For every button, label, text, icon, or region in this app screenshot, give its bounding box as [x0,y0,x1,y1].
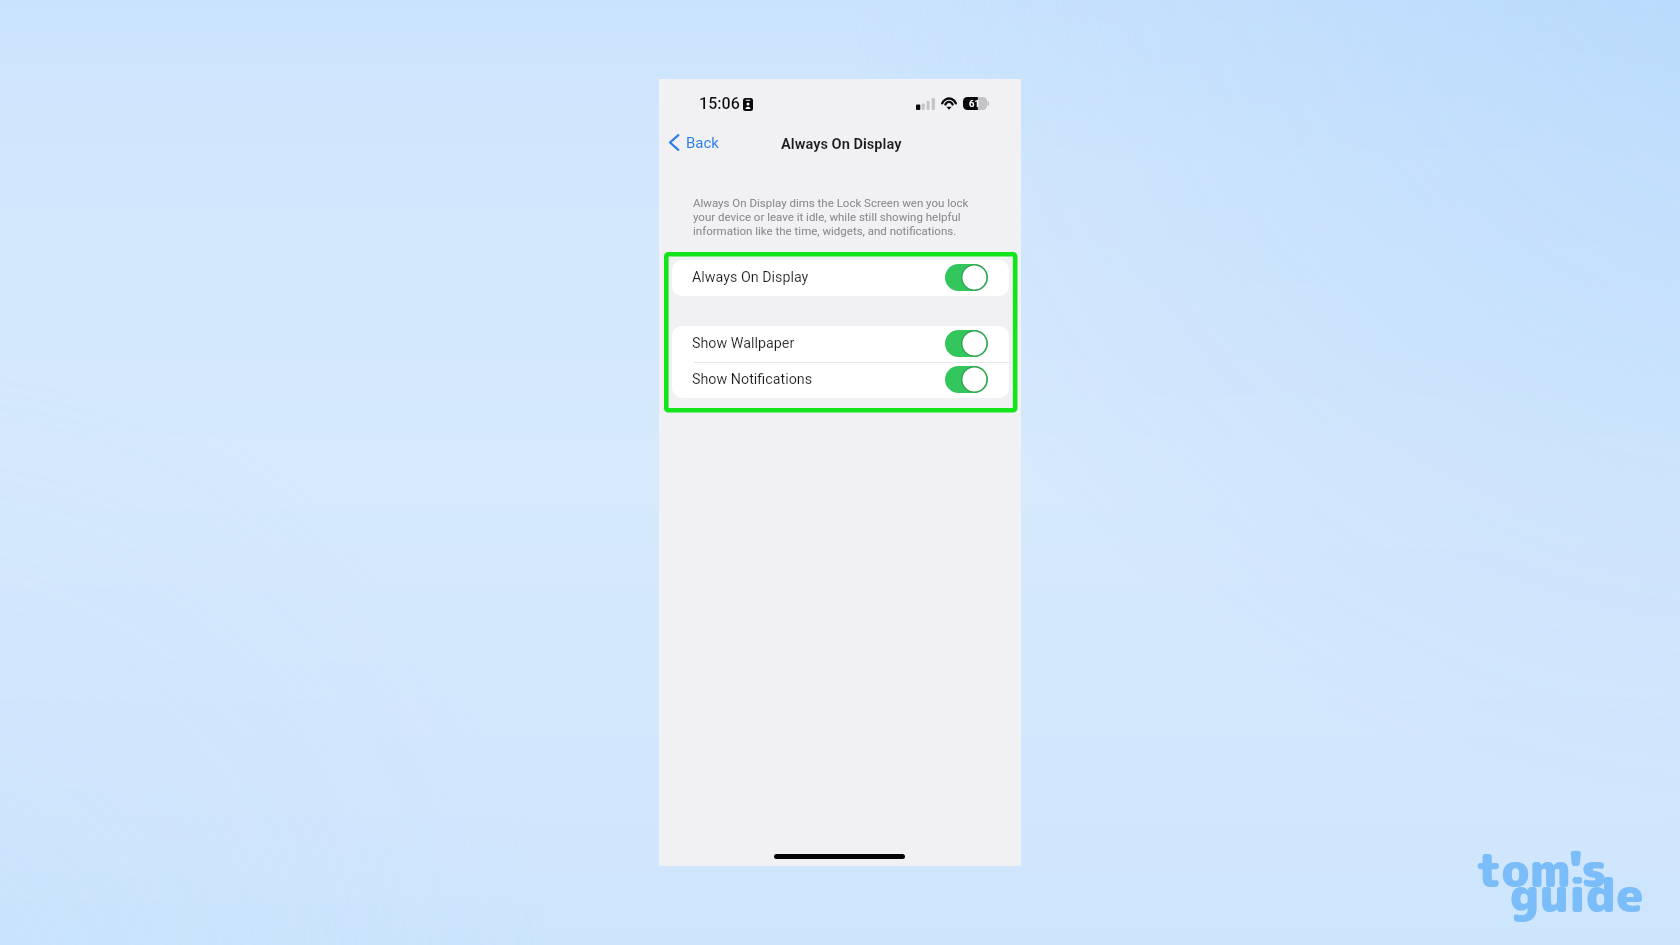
staticText: Show Wallpaper [692,335,795,352]
other: Back [669,134,679,151]
button[interactable]: Show Notifications [672,362,1009,398]
button[interactable]: Toggle setting [945,366,988,393]
staticText: Always On Display dims the Lock Screen w… [693,196,970,238]
button[interactable]: Show Wallpaper [672,326,1009,362]
staticText: Show Notifications [692,371,813,388]
staticText: 15:06 [699,94,740,113]
button[interactable]: Always On Display [672,260,1009,296]
button[interactable]: Toggle setting [945,264,988,291]
staticText: Always On Display [692,269,809,286]
staticText: tom's [1476,836,1607,902]
staticText: guide [1510,861,1644,927]
button[interactable]: Toggle setting [945,330,988,357]
staticText: Always On Display [781,135,902,152]
button[interactable]: Back [669,130,719,154]
staticText: Back [686,134,719,152]
staticText: 61 [969,98,980,109]
